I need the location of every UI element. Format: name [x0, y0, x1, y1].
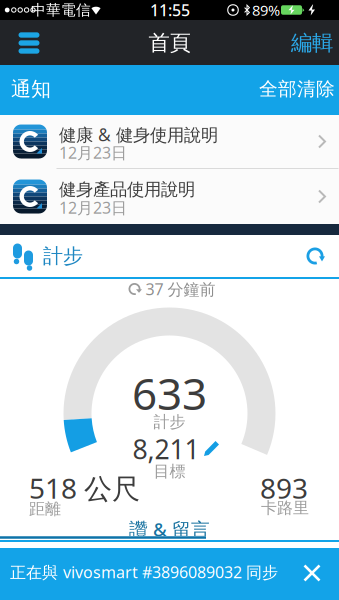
staticText: 通知 [11, 77, 51, 101]
button[interactable]: 讚 & 留言 [129, 517, 210, 541]
staticText: 距離 [29, 499, 61, 519]
staticText: 健康 & 健身使用說明 [59, 123, 218, 146]
staticText: 計步 [153, 412, 185, 432]
staticText: 518 公尺 [29, 469, 140, 507]
staticText: 計步 [43, 244, 83, 268]
button[interactable]: 全部清除 [259, 77, 335, 100]
button[interactable]: 健康 & 健身使用說明 [0, 115, 339, 168]
staticText: 12月23日 [59, 197, 127, 218]
staticText: 37 分鐘前 [145, 278, 215, 300]
staticText: 中華電信 [31, 1, 91, 19]
button[interactable]: 編輯 [291, 30, 333, 56]
staticText: 正在與 vivosmart #3896089032 同步 [10, 561, 278, 583]
staticText: 編輯 [291, 30, 333, 56]
staticText: 首頁 [148, 30, 190, 56]
staticText: 633 [132, 364, 207, 422]
staticText: 全部清除 [259, 77, 335, 100]
staticText: 卡路里 [261, 498, 309, 518]
staticText: 12月23日 [59, 142, 127, 163]
staticText: 893 [260, 469, 308, 507]
staticText: 健身產品使用說明 [59, 179, 195, 200]
button[interactable]: 編輯目標 [204, 440, 220, 456]
staticText: 讚 & 留言 [129, 517, 210, 541]
button[interactable]: 選單 [12, 28, 46, 58]
staticText: 目標 [153, 462, 185, 481]
staticText: 8,211 [132, 431, 199, 467]
staticText: 11:55 [150, 0, 190, 21]
staticText: 89% [252, 0, 280, 20]
button[interactable]: 健身產品使用說明 [0, 169, 339, 224]
button[interactable]: 同步 [306, 247, 323, 264]
button[interactable]: 關閉 [304, 565, 319, 580]
